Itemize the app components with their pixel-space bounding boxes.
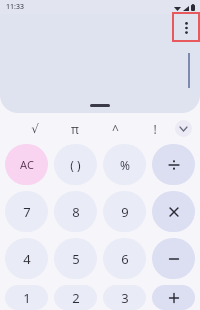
staticText: ( ) [70,157,81,173]
button[interactable]: 8 [54,191,97,232]
button[interactable]: More options [176,18,196,38]
button[interactable]: 1 [5,285,48,310]
staticText: √ [31,122,39,136]
staticText: 5 [72,250,80,268]
button[interactable]: Expand history [90,104,110,107]
staticText: π [71,121,79,137]
button[interactable]: ( ) [54,144,97,185]
button[interactable]: 9 [103,191,146,232]
button[interactable]: 7 [5,191,48,232]
button[interactable]: 5 [54,238,97,279]
button[interactable]: Divide [152,144,195,185]
button[interactable]: 3 [103,285,146,310]
staticText: ! [153,121,157,137]
staticText: 9 [121,203,129,221]
button[interactable]: Multiply [152,191,195,232]
button[interactable]: ! [135,113,175,144]
button[interactable]: 2 [54,285,97,310]
staticText: 8 [72,203,80,221]
button[interactable]: Add [152,285,195,310]
staticText: 4 [23,250,31,268]
button[interactable]: π [55,113,95,144]
staticText: % [120,157,130,173]
button[interactable]: AC [5,144,48,185]
button[interactable]: Subtract [152,238,195,279]
staticText: AC [20,157,34,172]
staticText: 11:33 [6,2,24,12]
button[interactable]: 4 [5,238,48,279]
button[interactable]: % [103,144,146,185]
button[interactable]: More functions [175,120,192,137]
staticText: 1 [23,289,31,307]
button[interactable]: ^ [95,113,135,144]
staticText: 6 [121,250,129,268]
staticText: 7 [23,203,31,221]
button[interactable]: √ [14,113,55,144]
staticText: ^ [112,121,119,137]
staticText: 2 [72,289,80,307]
staticText: 3 [121,289,129,307]
button[interactable]: 6 [103,238,146,279]
